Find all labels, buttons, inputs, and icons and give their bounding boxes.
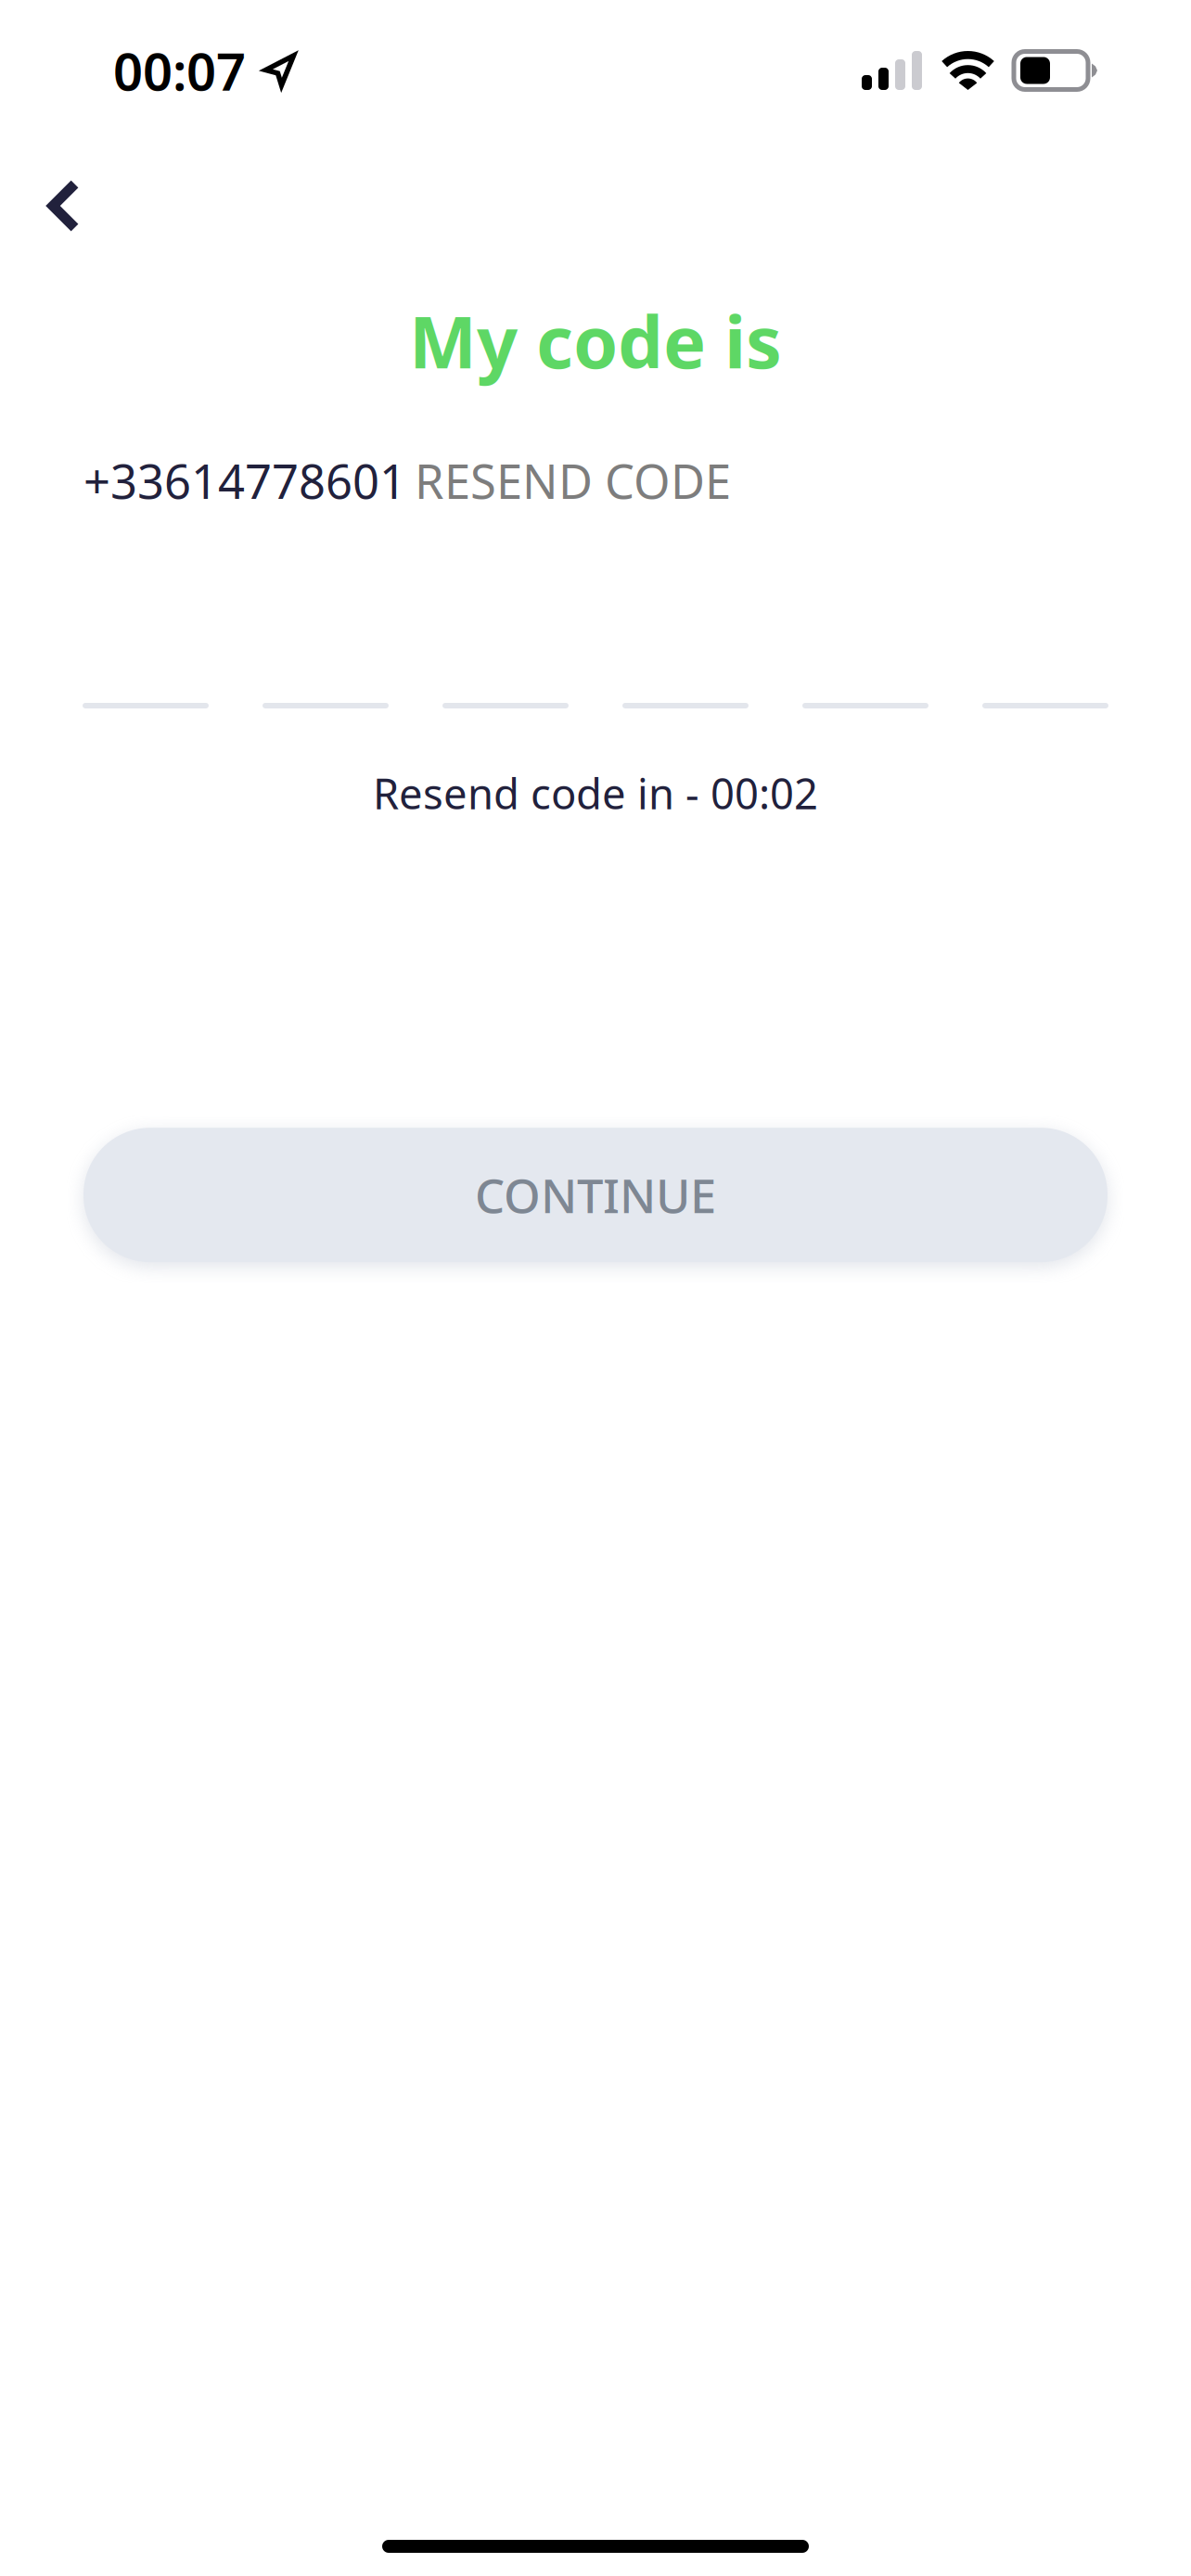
button[interactable]: Back: [0, 141, 110, 265]
staticText: Resend code in - 00:02: [373, 765, 818, 821]
staticText: RESEND CODE: [415, 449, 731, 512]
button[interactable]: CONTINUE: [83, 1128, 1108, 1262]
button[interactable]: Code digit 5: [802, 612, 928, 708]
staticText: CONTINUE: [475, 1164, 716, 1226]
button[interactable]: Code digit 4: [622, 612, 749, 708]
button[interactable]: Code digit 6: [982, 612, 1108, 708]
button[interactable]: Code digit 2: [263, 612, 389, 708]
button[interactable]: Code digit 1: [83, 612, 209, 708]
staticText: +33614778601: [83, 449, 406, 512]
staticText: My code is: [409, 293, 782, 388]
staticText: 00:07: [113, 36, 246, 105]
button[interactable]: RESEND CODE: [415, 449, 731, 512]
button[interactable]: Code digit 3: [442, 612, 569, 708]
